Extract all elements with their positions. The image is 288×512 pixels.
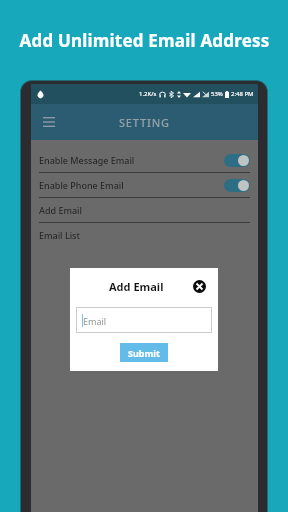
staticText: Submit: [128, 347, 160, 359]
button[interactable]: Submit: [120, 343, 168, 362]
button[interactable]: Add Email: [31, 198, 258, 222]
staticText: Add Unlimited Email Address: [19, 29, 270, 52]
staticText: 1.2K/s: [139, 90, 157, 98]
staticText: 53%: [211, 90, 223, 98]
button[interactable]: Enable Phone Email: [31, 173, 258, 197]
staticText: Add Email: [39, 204, 82, 216]
button[interactable]: Close: [189, 276, 209, 296]
button[interactable]: Email List: [31, 223, 258, 247]
button[interactable]: Email: [76, 307, 212, 333]
staticText: Enable Message Email: [39, 154, 135, 166]
staticText: Add Email: [109, 279, 164, 294]
staticText: Email: [83, 315, 107, 327]
staticText: 2:48 PM: [231, 90, 254, 98]
button[interactable]: Menu: [37, 110, 61, 134]
staticText: Enable Phone Email: [39, 179, 124, 191]
button[interactable]: Toggle Enable Message Email: [224, 154, 250, 167]
button[interactable]: Enable Message Email: [31, 148, 258, 172]
staticText: SETTING: [119, 115, 170, 130]
button[interactable]: Toggle Enable Phone Email: [224, 179, 250, 192]
staticText: Email List: [39, 229, 80, 241]
